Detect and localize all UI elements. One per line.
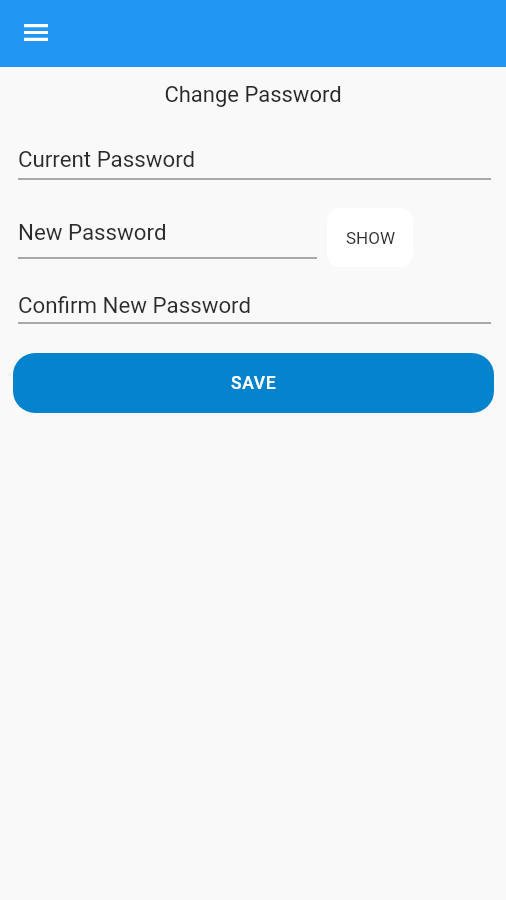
staticText: SHOW <box>346 228 395 248</box>
button[interactable]: SAVE <box>13 353 494 413</box>
staticText: New Password <box>18 219 167 245</box>
staticText: Current Password <box>18 146 196 172</box>
staticText: Confirm New Password <box>18 292 252 318</box>
staticText: SAVE <box>231 373 277 394</box>
staticText: Change Password <box>0 82 506 108</box>
button[interactable]: Open navigation menu <box>12 9 59 56</box>
button[interactable]: SHOW <box>321 202 419 273</box>
